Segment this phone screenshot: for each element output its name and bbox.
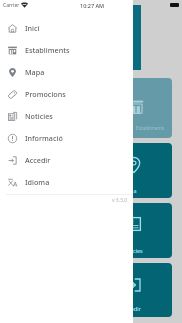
staticText: Informació [25, 133, 63, 143]
staticText: Noticies [133, 247, 143, 254]
staticText: Idioma [25, 177, 50, 187]
staticText: Carrier [3, 2, 20, 9]
staticText: Accedir [133, 305, 141, 312]
staticText: Noticies [25, 111, 53, 121]
staticText: Mapa [25, 67, 45, 77]
staticText: Inici [25, 23, 40, 33]
staticText: Mapa [133, 187, 137, 194]
button[interactable]: Noticies [0, 105, 133, 127]
button[interactable]: Mapa [133, 143, 172, 198]
button[interactable]: Accedir [133, 263, 172, 317]
button[interactable]: Noticies [133, 203, 172, 258]
button[interactable]: Mapa [0, 61, 133, 83]
staticText: Establiments [136, 125, 165, 131]
button[interactable]: Establiments [0, 39, 133, 61]
staticText: v 3.3.0 [112, 197, 128, 204]
button[interactable]: Informació [0, 127, 133, 149]
button[interactable]: Promocions [0, 83, 133, 105]
button[interactable]: Inici [0, 17, 133, 39]
staticText: Establiments [25, 45, 70, 55]
staticText: Accedir [25, 155, 51, 165]
button[interactable]: Idioma [0, 171, 133, 193]
staticText: Promocions [25, 89, 66, 99]
button[interactable]: Accedir [0, 149, 133, 171]
button[interactable]: Establiments [133, 78, 172, 138]
staticText: 10:27 AM [80, 2, 105, 9]
